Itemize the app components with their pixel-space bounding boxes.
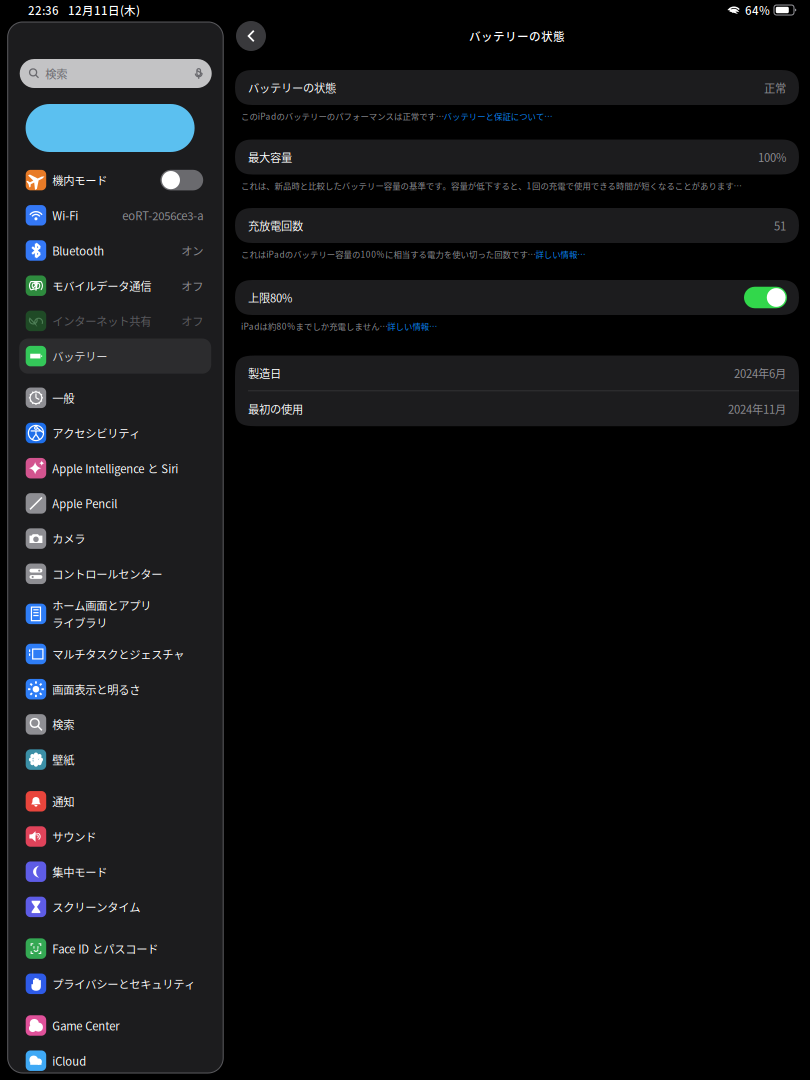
button[interactable]: Face ID とパスコード [19,931,211,966]
staticText: eoRT-2056ce3-a [122,207,203,223]
staticText: iPadは約80%までしか充電しません。 [241,320,387,332]
button[interactable]: 上限80% [744,287,787,308]
staticText: これは、新品時と比較したバッテリー容量の基準です。容量が低下すると、1回の充電で… [241,179,741,192]
staticText: マルチタスクとジェスチャ [52,646,184,662]
staticText: 12月11日(木) [68,2,140,18]
staticText: アクセシビリティ [52,425,140,441]
staticText: バッテリー [52,348,107,364]
staticText: コントロールセンター [52,566,162,582]
staticText: 22:36 [28,2,59,18]
button[interactable]: マルチタスクとジェスチャ [19,636,211,672]
staticText: バッテリーの状態 [469,28,565,44]
staticText: 2024年11月 [728,400,786,417]
button[interactable]: 戻る [236,21,266,51]
staticText: インターネット共有 [52,313,151,329]
button[interactable]: スクリーンタイム [19,889,211,924]
button[interactable]: Apple Pencil [19,486,211,521]
staticText: 画面表示と明るさ [52,681,140,697]
staticText: 100% [758,149,786,165]
button[interactable]: 壁紙 [19,742,211,777]
staticText: 集中モード [52,863,107,880]
button[interactable]: バッテリーと保証について… [444,110,552,122]
staticText: オン [181,242,203,259]
staticText: 詳しい情報… [387,320,437,332]
button[interactable]: Wi-Fi [19,198,211,233]
staticText: 最大容量 [248,149,292,165]
staticText: オフ [181,313,203,329]
button[interactable]: 機内モード [19,162,211,198]
staticText: Wi-Fi [52,207,78,223]
staticText: 上限80% [248,289,292,306]
button[interactable]: 詳しい情報… [535,248,585,260]
button[interactable]: 集中モード [19,854,211,889]
staticText: 壁紙 [52,751,74,768]
staticText: ホーム画面とアプリ [52,597,151,613]
button[interactable]: モバイルデータ通信 [19,268,211,303]
button[interactable]: Game Center [19,1008,211,1043]
staticText: 2024年6月 [734,365,786,381]
button[interactable]: サウンド [19,819,211,854]
button[interactable]: 画面表示と明るさ [19,672,211,707]
staticText: 最初の使用 [248,400,303,417]
staticText: モバイルデータ通信 [52,277,151,294]
button[interactable]: インターネット共有 [19,303,211,338]
staticText: プライバシーとセキュリティ [52,976,195,992]
staticText: ライブラリ [52,614,107,631]
staticText: 検索 [45,65,67,82]
staticText: 一般 [52,390,74,406]
staticText: スクリーンタイム [52,899,140,915]
staticText: 製造日 [248,365,281,381]
staticText: このiPadのバッテリーのパフォーマンスは正常です。 [241,110,444,122]
staticText: iCloud [52,1052,86,1069]
button[interactable]: 検索 [19,707,211,742]
button[interactable]: Bluetooth [19,233,211,268]
staticText: 正常 [764,79,786,96]
staticText: 通知 [52,793,74,809]
button[interactable]: Apple Intelligence と Siri [19,451,211,486]
staticText: 詳しい情報… [535,248,585,260]
staticText: サウンド [52,828,96,845]
button[interactable]: ホーム画面とアプリ [19,591,211,636]
staticText: カメラ [52,530,85,547]
button[interactable]: プライバシーとセキュリティ [19,966,211,1001]
staticText: オフ [181,277,203,294]
staticText: Face ID とパスコード [52,940,158,957]
staticText: Apple Pencil [52,495,117,512]
button[interactable]: iCloud [19,1043,211,1078]
staticText: Game Center [52,1017,119,1034]
staticText: バッテリーと保証について… [444,110,552,122]
staticText: これはiPadのバッテリー容量の100%に相当する電力を使い切った回数です。 [241,248,535,260]
staticText: 機内モード [52,172,107,188]
staticText: バッテリーの状態 [248,79,336,96]
button[interactable]: カメラ [19,521,211,556]
staticText: Bluetooth [52,242,104,259]
button[interactable]: 詳しい情報… [387,320,437,332]
button[interactable]: バッテリー [19,338,211,374]
button[interactable]: 一般 [19,380,211,415]
staticText: Apple Intelligence と Siri [52,460,178,476]
staticText: 充放電回数 [248,217,303,234]
button[interactable]: 通知 [19,784,211,819]
staticText: 検索 [52,716,74,733]
staticText: 51 [774,217,786,234]
button[interactable]: コントロールセンター [19,556,211,591]
button[interactable]: アクセシビリティ [19,415,211,451]
staticText: 64% [745,2,770,18]
